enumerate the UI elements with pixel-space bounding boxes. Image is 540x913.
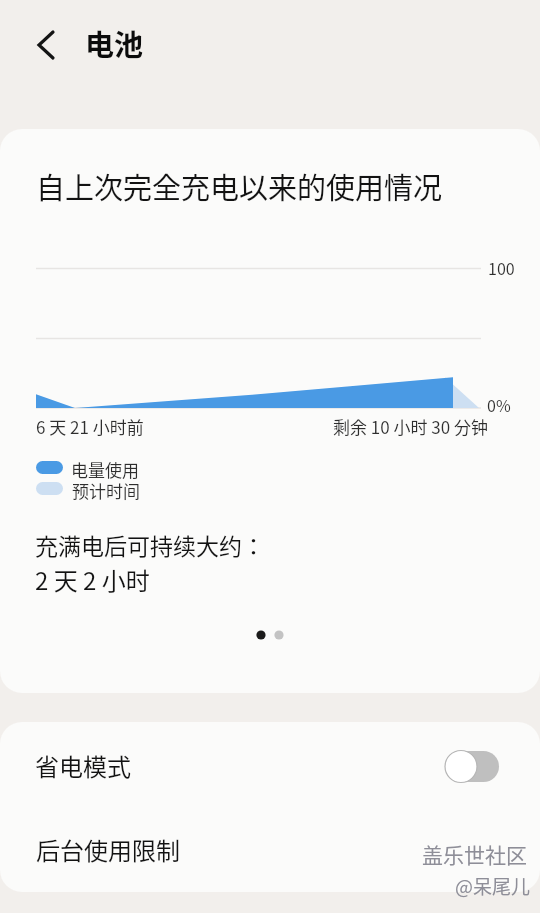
staticText: 电量使用 <box>71 457 139 482</box>
button[interactable] <box>0 722 540 811</box>
staticText: 电池 <box>85 22 144 64</box>
button[interactable] <box>0 811 540 892</box>
staticText: 6 天 21 小时前 <box>36 414 144 439</box>
staticText: 盖乐世社区 <box>422 839 527 869</box>
staticText: @呆尾儿 <box>455 872 530 900</box>
staticText: 后台使用限制 <box>36 832 180 867</box>
staticText: 剩余 10 小时 30 分钟 <box>333 414 488 439</box>
staticText: 充满电后可持续大约： <box>35 528 265 561</box>
staticText: 预计时间 <box>72 478 140 503</box>
staticText: 0% <box>487 393 511 416</box>
staticText: 自上次完全充电以来的使用情况 <box>36 165 443 207</box>
staticText: 2 天 2 小时 <box>35 562 150 597</box>
staticText: 100 <box>488 256 515 279</box>
button[interactable]: Power saving mode toggle <box>445 751 499 782</box>
button[interactable]: Back <box>18 17 74 73</box>
staticText: 省电模式 <box>35 748 131 783</box>
